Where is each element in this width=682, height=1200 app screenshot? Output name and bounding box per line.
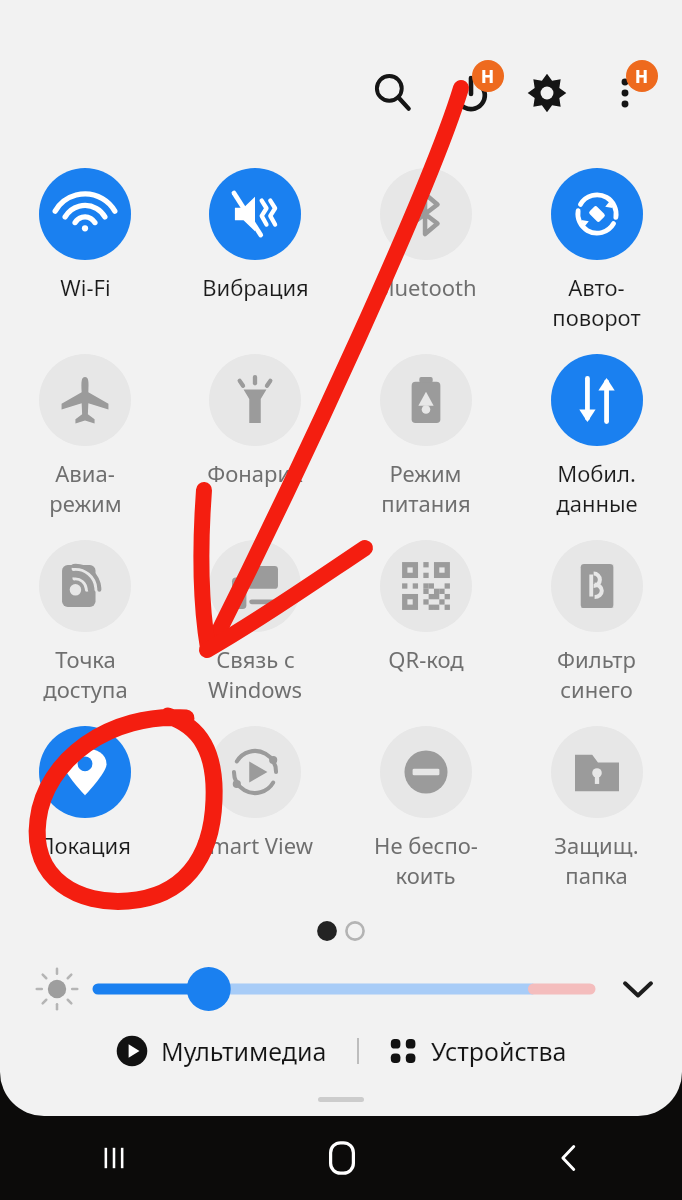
button[interactable]: Settings — [518, 64, 576, 122]
button[interactable]: Home — [228, 1116, 455, 1200]
staticText: Авто- — [568, 272, 625, 302]
button[interactable]: Авто- — [511, 160, 682, 346]
staticText: Локация — [39, 830, 131, 860]
button[interactable]: Bluetooth — [340, 160, 511, 346]
staticText: Авиа- — [55, 458, 115, 488]
button[interactable] — [98, 961, 590, 1017]
button[interactable]: Защищ. — [511, 718, 682, 898]
button[interactable]: Связь с — [170, 532, 340, 718]
button[interactable]: Режим — [340, 346, 511, 532]
button[interactable]: Мультимедиа — [109, 1034, 333, 1068]
staticText: доступа — [43, 674, 128, 704]
staticText: Wi-Fi — [60, 272, 111, 302]
button[interactable]: Smart View — [170, 718, 340, 898]
button[interactable]: Фонарик — [170, 346, 340, 532]
button[interactable]: Expand — [610, 961, 666, 1017]
button[interactable]: Мобил. — [511, 346, 682, 532]
staticText: синего — [560, 674, 633, 704]
button[interactable]: Авиа- — [0, 346, 170, 532]
staticText: данные — [556, 488, 638, 518]
button[interactable]: Локация — [0, 718, 170, 898]
staticText: Фильтр — [557, 644, 636, 674]
staticText: H — [635, 65, 649, 88]
staticText: H — [481, 65, 495, 88]
button[interactable]: QR-код — [340, 532, 511, 718]
staticText: Точка — [55, 644, 116, 674]
staticText: Bluetooth — [374, 272, 477, 302]
staticText: Windows — [208, 674, 302, 704]
staticText: Защищ. — [554, 830, 639, 860]
staticText: Режим — [389, 458, 462, 488]
button[interactable]: Search — [364, 64, 422, 122]
staticText: папка — [565, 860, 628, 890]
staticText: Smart View — [197, 830, 313, 860]
button[interactable]: Recents — [0, 1116, 228, 1200]
button[interactable]: Power — [442, 64, 500, 122]
button[interactable]: Не беспо- — [340, 718, 511, 898]
button[interactable]: Wi-Fi — [0, 160, 170, 346]
button[interactable]: More options — [596, 64, 654, 122]
staticText: Вибрация — [202, 272, 309, 302]
button[interactable]: Точка — [0, 532, 170, 718]
staticText: Мультимедиа — [161, 1034, 327, 1068]
button[interactable]: Back — [455, 1116, 682, 1200]
staticText: поворот — [552, 302, 641, 332]
staticText: питания — [381, 488, 471, 518]
staticText: режим — [49, 488, 122, 518]
staticText: Фонарик — [207, 458, 303, 488]
button[interactable]: Фильтр — [511, 532, 682, 718]
button[interactable]: Вибрация — [170, 160, 340, 346]
staticText: Не беспо- — [374, 830, 478, 860]
staticText: Мобил. — [557, 458, 636, 488]
button[interactable]: Устройства — [383, 1034, 573, 1068]
staticText: QR-код — [388, 644, 464, 674]
staticText: Связь с — [216, 644, 295, 674]
staticText: Устройства — [431, 1034, 567, 1068]
staticText: коить — [395, 860, 456, 890]
